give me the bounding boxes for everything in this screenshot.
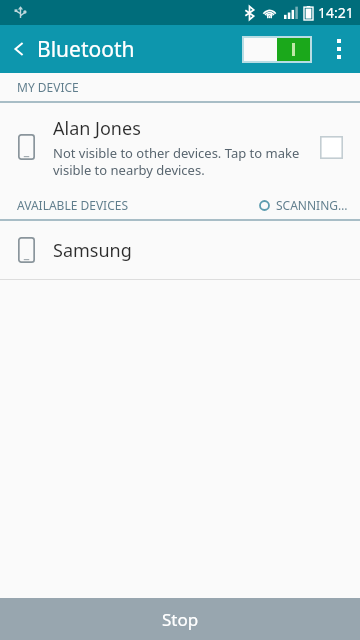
staticText: Alan Jones	[53, 116, 141, 141]
button[interactable]: Alan Jones	[0, 103, 360, 191]
button[interactable]: Visibility checkbox	[314, 130, 348, 164]
button[interactable]: Bluetooth on/off	[238, 36, 316, 63]
staticText: Not visible to other devices. Tap to mak…	[53, 144, 300, 179]
button[interactable]: Back	[0, 25, 238, 73]
button[interactable]: Stop	[0, 598, 360, 640]
button[interactable]: Samsung	[0, 221, 360, 279]
staticText: Stop	[162, 608, 199, 631]
other: Back	[10, 40, 28, 58]
staticText: MY DEVICE	[17, 79, 79, 95]
staticText: SCANNING…	[276, 197, 348, 213]
staticText: Samsung	[53, 238, 132, 263]
staticText: Bluetooth	[37, 35, 135, 64]
button[interactable]: More options	[322, 25, 356, 73]
staticText: AVAILABLE DEVICES	[17, 197, 129, 213]
staticText: 14:21	[318, 3, 354, 22]
